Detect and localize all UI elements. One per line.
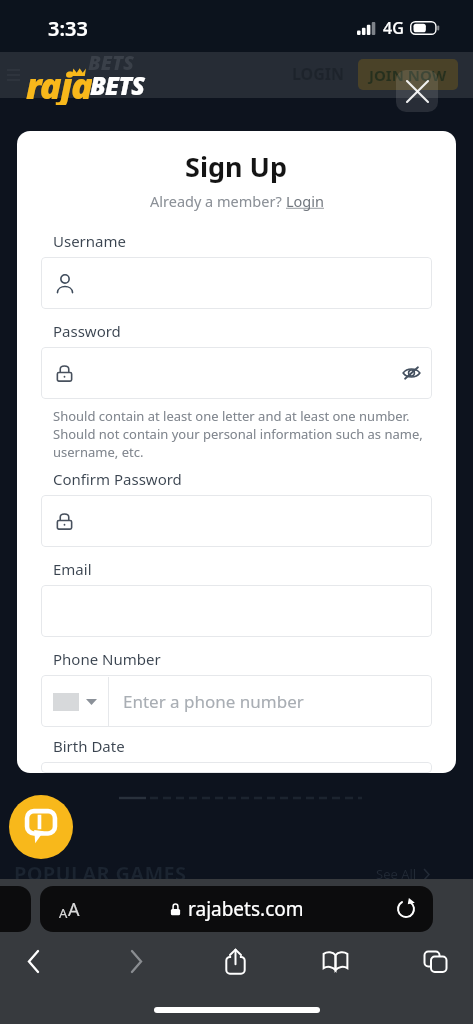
- button[interactable]: [41, 585, 432, 637]
- staticText: See All: [376, 865, 417, 883]
- staticText: POPULAR GAMES: [14, 860, 187, 887]
- staticText: Phone Number: [53, 649, 161, 669]
- button[interactable]: [41, 762, 432, 773]
- button[interactable]: Tabs: [413, 939, 457, 983]
- button[interactable]: See All: [376, 865, 430, 883]
- button[interactable]: Reload: [392, 895, 420, 923]
- button[interactable]: [41, 495, 432, 547]
- staticText: JOIN NOW: [369, 65, 447, 85]
- button[interactable]: Back: [11, 939, 55, 983]
- button[interactable]: Bookmarks: [313, 939, 357, 983]
- staticText: raja: [26, 61, 92, 105]
- button[interactable]: Enter a phone number: [41, 675, 432, 727]
- staticText: 3:33: [48, 15, 88, 42]
- staticText: Email: [53, 559, 92, 579]
- button[interactable]: Close: [396, 70, 438, 112]
- button[interactable]: Share: [213, 939, 257, 983]
- staticText: Username: [53, 231, 126, 251]
- staticText: Password: [53, 321, 121, 341]
- button[interactable]: Chat support: [9, 795, 73, 859]
- staticText: A: [68, 897, 80, 922]
- button[interactable]: Show password: [399, 361, 423, 385]
- staticText: BETS: [90, 68, 145, 102]
- button[interactable]: Forward: [114, 939, 158, 983]
- button[interactable]: Show password: [41, 347, 432, 399]
- staticText: Already a member?: [150, 191, 286, 211]
- button[interactable]: Login: [286, 191, 324, 211]
- staticText: Sign Up: [185, 148, 288, 185]
- staticText: 4G: [383, 17, 404, 39]
- staticText: BETS: [88, 49, 134, 76]
- staticText: rajabets.com: [188, 896, 304, 922]
- staticText: Birth Date: [53, 736, 125, 756]
- staticText: Enter a phone number: [123, 690, 304, 713]
- staticText: Confirm Password: [53, 469, 182, 489]
- staticText: A: [59, 904, 68, 922]
- button[interactable]: A: [40, 886, 433, 932]
- button[interactable]: JOIN NOW: [358, 59, 458, 90]
- staticText: Should contain at least one letter and a…: [53, 407, 428, 461]
- button[interactable]: LOGIN: [292, 63, 345, 85]
- button[interactable]: [41, 257, 432, 309]
